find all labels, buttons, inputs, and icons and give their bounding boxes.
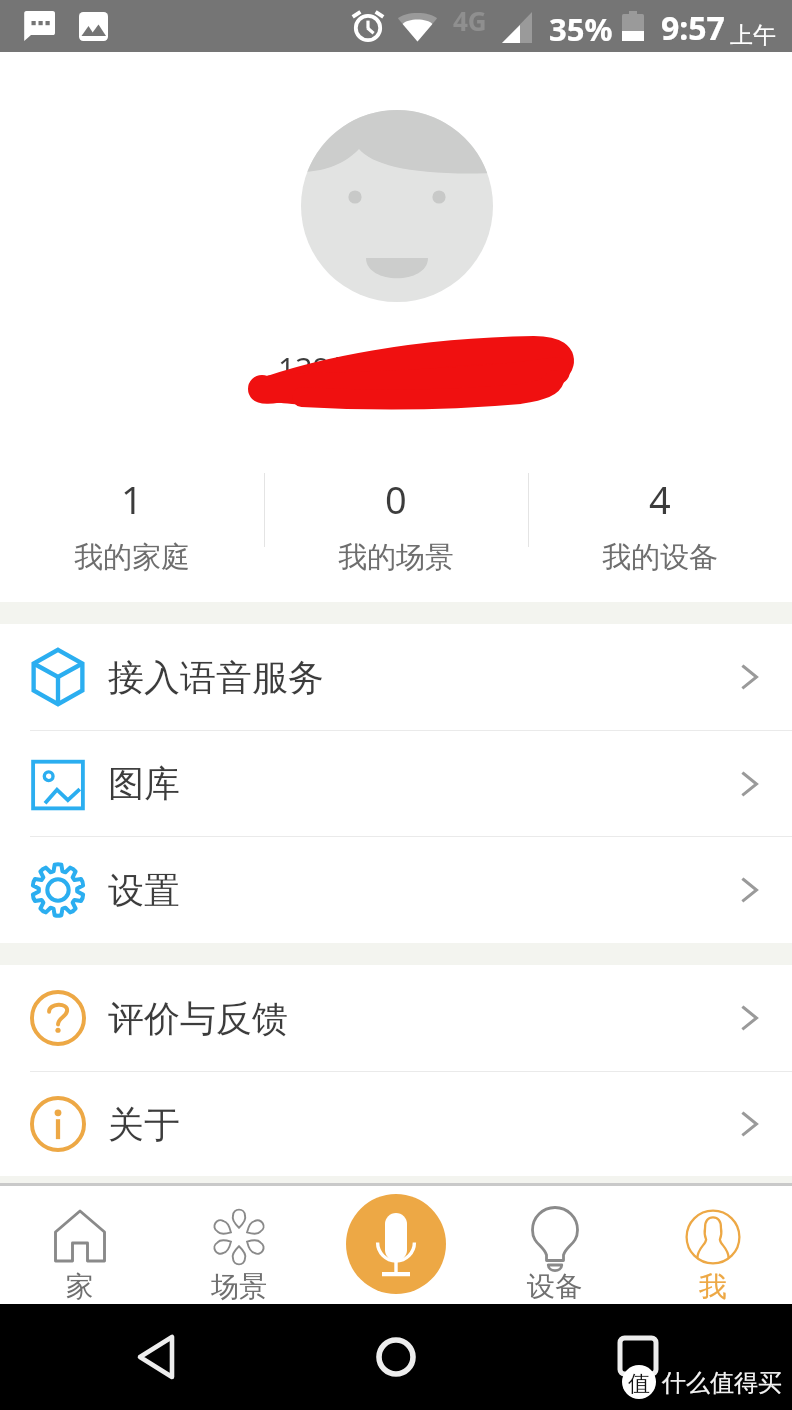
button[interactable]: 1: [0, 473, 264, 573]
button[interactable]: 场景: [159, 1186, 318, 1304]
staticText: 场景: [211, 1269, 267, 1304]
staticText: 4: [649, 473, 671, 525]
staticText: 138****1234: [278, 348, 465, 389]
button[interactable]: 接入语音服务: [0, 624, 792, 730]
staticText: 什么值得买: [662, 1368, 782, 1398]
staticText: 35%: [549, 8, 613, 50]
staticText: 家: [66, 1269, 94, 1304]
staticText: 1: [121, 473, 143, 525]
button[interactable]: 关于: [0, 1072, 792, 1176]
button[interactable]: 设备: [476, 1186, 634, 1304]
staticText: 设置: [108, 868, 180, 913]
staticText: 我的设备: [602, 539, 718, 573]
button[interactable]: 语音助手: [346, 1194, 446, 1294]
staticText: 我: [699, 1269, 727, 1304]
button[interactable]: 评价与反馈: [0, 965, 792, 1071]
staticText: 图库: [108, 761, 180, 806]
staticText: 我的场景: [338, 539, 454, 573]
staticText: 我的家庭: [74, 539, 190, 573]
staticText: 评价与反馈: [108, 996, 288, 1041]
staticText: 关于: [108, 1102, 180, 1147]
button[interactable]: 家: [0, 1186, 159, 1304]
staticText: 上午: [730, 21, 776, 50]
button[interactable]: 图库: [0, 731, 792, 836]
staticText: 值: [628, 1370, 650, 1398]
button[interactable]: 0: [264, 473, 528, 573]
staticText: 接入语音服务: [108, 655, 324, 700]
staticText: 4G: [453, 3, 487, 38]
staticText: 设备: [527, 1269, 583, 1304]
staticText: 9:57: [661, 6, 725, 50]
button[interactable]: 设置: [0, 837, 792, 943]
staticText: 0: [385, 473, 407, 525]
button[interactable]: 我: [634, 1186, 792, 1304]
button[interactable]: 4: [528, 473, 792, 573]
